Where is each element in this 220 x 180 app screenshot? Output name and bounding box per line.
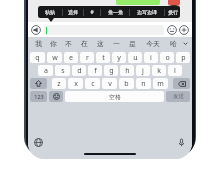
staticText: 是 (129, 39, 136, 48)
button[interactable]: t (96, 52, 110, 63)
staticText: u (133, 53, 138, 63)
staticText: l (174, 66, 176, 76)
button[interactable]: 这 (92, 37, 108, 50)
button[interactable]: w (47, 52, 62, 63)
button[interactable]: 空格 (65, 91, 164, 102)
staticText: h (125, 66, 130, 76)
staticText: 在 (81, 39, 88, 48)
button[interactable]: j (136, 65, 150, 76)
staticText: d (77, 66, 82, 76)
staticText: 选择 (68, 9, 78, 15)
staticText: 这 (97, 39, 104, 48)
staticText: y (117, 53, 121, 63)
button[interactable]: u (128, 52, 142, 63)
button[interactable]: m (153, 78, 168, 89)
button[interactable]: n (136, 78, 151, 89)
staticText: s (61, 66, 65, 76)
button[interactable]: 123 (30, 91, 47, 102)
button[interactable]: # (84, 6, 100, 18)
staticText: 发送 (173, 93, 184, 100)
button[interactable]: 你 (46, 37, 61, 50)
button[interactable]: 我 (31, 37, 46, 50)
button[interactable]: 选择 (63, 6, 83, 18)
staticText: 边写边译 (137, 9, 157, 15)
button[interactable]: Emoji (167, 25, 177, 35)
button[interactable]: 在 (76, 37, 92, 50)
staticText: 你 (50, 39, 57, 48)
button[interactable]: Voice input (31, 25, 41, 35)
button[interactable]: 一 (108, 37, 124, 50)
button[interactable]: o (160, 52, 174, 63)
staticText: 空格 (109, 93, 121, 101)
staticText: a (44, 66, 48, 76)
button[interactable] (44, 25, 164, 35)
staticText: # (90, 9, 94, 16)
button[interactable]: f (88, 65, 102, 76)
button[interactable]: Expand candidates (181, 37, 189, 50)
staticText: 一 (113, 39, 120, 48)
button[interactable]: More options (179, 25, 189, 35)
staticText: 哈 (170, 39, 177, 48)
staticText: v (108, 79, 112, 89)
staticText: c (91, 79, 95, 89)
staticText: f (94, 66, 97, 76)
button[interactable]: p (176, 52, 190, 63)
button[interactable]: Emoji keyboard (49, 91, 63, 102)
staticText: r (86, 53, 89, 63)
button[interactable]: 是 (124, 37, 140, 50)
staticText: z (57, 79, 61, 89)
button[interactable]: 边写边译 (130, 6, 164, 18)
staticText: g (109, 66, 114, 76)
button[interactable]: Switch keyboard language (34, 138, 43, 147)
staticText: 不 (65, 39, 72, 48)
button[interactable]: v (102, 78, 117, 89)
button[interactable]: a (38, 65, 53, 76)
staticText: e (69, 53, 73, 63)
button[interactable]: b (119, 78, 134, 89)
staticText: o (165, 53, 170, 63)
button[interactable]: 粘贴 (38, 6, 62, 18)
staticText: m (157, 79, 164, 89)
staticText: q (35, 53, 40, 63)
staticText: i (150, 53, 152, 63)
staticText: 粘贴 (45, 9, 55, 15)
button[interactable]: d (72, 65, 86, 76)
button[interactable]: Backspace (173, 78, 190, 89)
staticText: t (102, 53, 105, 63)
button[interactable]: l (168, 65, 182, 76)
button[interactable]: 今天 (140, 37, 165, 50)
staticText: n (141, 79, 146, 89)
button[interactable]: Voice dictation (177, 138, 186, 147)
button[interactable]: c (85, 78, 100, 89)
staticText: w (52, 53, 58, 63)
button[interactable]: 不 (61, 37, 76, 50)
button[interactable]: 推一推 (101, 6, 129, 18)
button[interactable]: s (55, 65, 70, 76)
button[interactable]: h (120, 65, 134, 76)
button[interactable]: g (104, 65, 118, 76)
button[interactable]: 发送 (166, 91, 190, 102)
staticText: 推一推 (108, 9, 123, 15)
staticText: 123 (34, 93, 44, 100)
staticText: j (142, 66, 144, 76)
staticText: 今天 (146, 39, 160, 48)
button[interactable]: i (144, 52, 158, 63)
button[interactable]: x (68, 78, 83, 89)
button[interactable]: z (52, 78, 66, 89)
button[interactable]: y (112, 52, 126, 63)
button[interactable]: k (152, 65, 166, 76)
staticText: 换行 (168, 9, 178, 15)
button[interactable]: q (30, 52, 45, 63)
button[interactable]: Shift (30, 78, 47, 89)
staticText: b (124, 79, 129, 89)
staticText: p (181, 53, 186, 63)
button[interactable]: r (80, 52, 94, 63)
staticText: k (157, 66, 161, 76)
button[interactable]: 换行 (165, 6, 180, 18)
staticText: x (74, 79, 78, 89)
staticText: 我 (35, 39, 42, 48)
button[interactable]: 哈 (165, 37, 181, 50)
button[interactable]: e (64, 52, 78, 63)
